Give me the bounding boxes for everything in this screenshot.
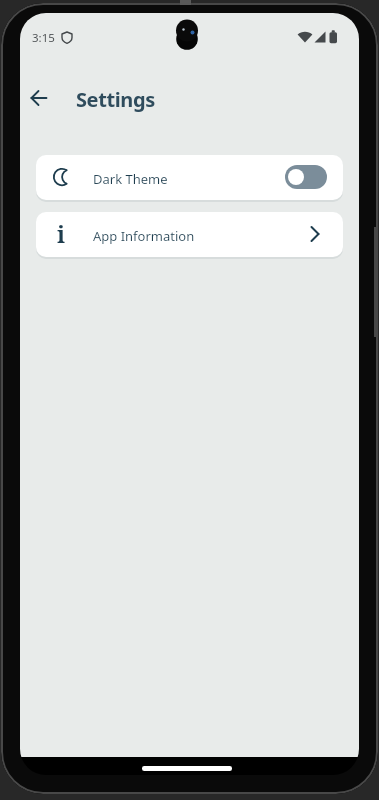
- button[interactable]: [285, 165, 327, 189]
- staticText: Dark Theme: [93, 170, 168, 188]
- staticText: Settings: [76, 86, 155, 113]
- staticText: 3:15: [32, 30, 55, 46]
- button[interactable]: i: [36, 212, 343, 257]
- staticText: App Information: [93, 227, 195, 245]
- button[interactable]: Dark Theme: [36, 155, 343, 200]
- button[interactable]: [26, 85, 52, 111]
- staticText: i: [57, 218, 66, 249]
